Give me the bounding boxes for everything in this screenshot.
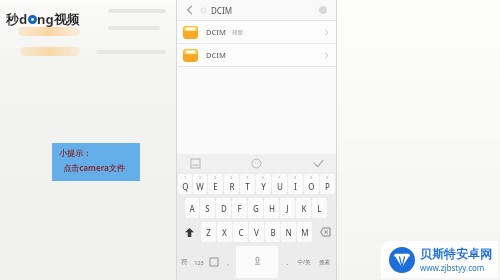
button[interactable]: S: [200, 198, 215, 218]
staticText: DCIM: [211, 5, 233, 16]
staticText: 3: [214, 175, 217, 180]
button[interactable]: Shift: [178, 222, 200, 242]
button[interactable]: K: [296, 198, 311, 218]
staticText: C: [238, 227, 244, 238]
button[interactable]: 4: [224, 174, 239, 194]
button[interactable]: 5: [240, 174, 255, 194]
button[interactable]: 1: [178, 174, 192, 194]
button[interactable]: DCIM: [177, 21, 336, 43]
button[interactable]: 符: [178, 246, 191, 278]
button[interactable]: 小提示：: [52, 143, 140, 181]
button[interactable]: Input method: [207, 246, 220, 278]
button[interactable]: N: [281, 222, 296, 242]
button[interactable]: Back: [183, 3, 197, 17]
button[interactable]: 贝斯特安卓网 www.zjbstyy.com: [389, 246, 492, 273]
staticText: 5: [246, 175, 249, 180]
button[interactable]: Backspace: [313, 222, 335, 242]
staticText: Z: [206, 227, 211, 238]
button[interactable]: L: [312, 198, 327, 218]
staticText: R: [229, 181, 235, 192]
staticText: F: [237, 203, 242, 214]
staticText: Q: [182, 181, 189, 192]
staticText: E: [213, 181, 218, 192]
staticText: 中/英: [297, 258, 311, 266]
button[interactable]: 3: [208, 174, 223, 194]
staticText: G: [253, 203, 259, 214]
button[interactable]: ,: [221, 246, 234, 278]
button[interactable]: 6: [256, 174, 271, 194]
button[interactable]: A: [185, 198, 199, 218]
staticText: 2: [199, 175, 202, 180]
staticText: O: [308, 181, 315, 192]
button[interactable]: G: [248, 198, 263, 218]
staticText: V: [254, 227, 259, 238]
staticText: 搜索: [319, 259, 330, 266]
staticText: 4: [230, 175, 233, 180]
button[interactable]: 搜索: [314, 246, 335, 278]
button[interactable]: Hide keyboard: [300, 154, 336, 172]
button[interactable]: M: [297, 222, 312, 242]
staticText: 小提示：: [59, 148, 91, 158]
staticText: B: [270, 227, 276, 238]
staticText: 秒d: [6, 10, 28, 28]
staticText: T: [245, 181, 250, 192]
staticText: K: [301, 203, 307, 214]
button[interactable]: 7: [272, 174, 287, 194]
staticText: 点击camera文件: [59, 162, 125, 173]
staticText: 9: [310, 175, 313, 180]
button[interactable]: Emoji: [238, 154, 274, 172]
staticText: A: [189, 203, 195, 214]
staticText: 8: [294, 175, 297, 180]
button[interactable]: DCIM: [177, 44, 336, 66]
staticText: H: [269, 203, 275, 214]
staticText: 6: [262, 175, 265, 180]
button[interactable]: F: [232, 198, 247, 218]
staticText: P: [325, 181, 330, 192]
staticText: J: [286, 203, 289, 214]
staticText: DCIM: [206, 27, 226, 37]
button[interactable]: 9: [304, 174, 319, 194]
button[interactable]: 秒懂视频: [6, 10, 80, 28]
staticText: I: [294, 181, 297, 192]
button[interactable]: V: [249, 222, 264, 242]
button[interactable]: 中/英: [294, 246, 313, 278]
button[interactable]: D: [216, 198, 231, 218]
staticText: .: [286, 258, 288, 267]
staticText: 相册: [232, 29, 243, 36]
button[interactable]: 123: [192, 246, 206, 278]
button[interactable]: 2: [193, 174, 207, 194]
staticText: www.zjbstyy.com: [420, 262, 485, 273]
staticText: L: [317, 203, 322, 214]
staticText: Y: [261, 181, 266, 192]
button[interactable]: C: [233, 222, 248, 242]
staticText: W: [196, 181, 204, 192]
button[interactable]: X: [217, 222, 232, 242]
button[interactable]: 0: [320, 174, 335, 194]
staticText: DCIM: [206, 50, 226, 60]
staticText: 7: [278, 175, 281, 180]
staticText: 贝斯特安卓网: [420, 246, 492, 261]
button[interactable]: 8: [288, 174, 303, 194]
staticText: 0: [326, 175, 329, 180]
staticText: U: [277, 181, 283, 192]
button[interactable]: B: [265, 222, 280, 242]
button[interactable]: Voice input: [236, 246, 278, 278]
staticText: S: [205, 203, 210, 214]
button[interactable]: H: [264, 198, 279, 218]
staticText: M: [301, 227, 309, 238]
staticText: 123: [194, 259, 204, 266]
button[interactable]: Z: [201, 222, 216, 242]
staticText: D: [221, 203, 227, 214]
staticText: 1: [184, 175, 187, 180]
button[interactable]: Clear: [316, 3, 330, 17]
staticText: ,: [227, 258, 229, 267]
button[interactable]: Clipboard: [177, 154, 213, 172]
staticText: N: [285, 227, 292, 238]
staticText: 符: [181, 258, 188, 266]
staticText: ng视频: [37, 10, 80, 28]
button[interactable]: J: [280, 198, 295, 218]
staticText: X: [222, 227, 227, 238]
